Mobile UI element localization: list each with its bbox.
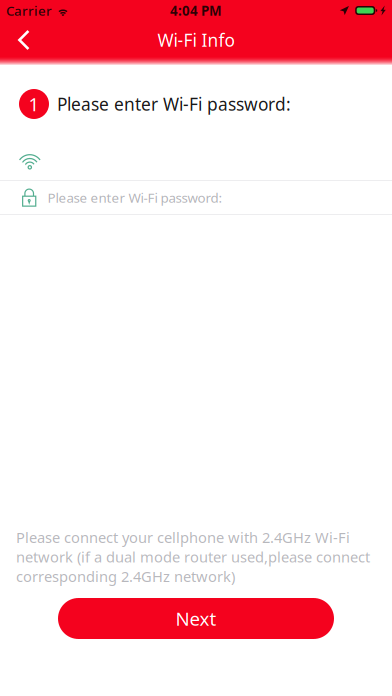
staticText: Wi-Fi Info [157, 28, 234, 51]
staticText: 1 [28, 92, 39, 116]
button[interactable]: Please enter Wi-Fi password [0, 181, 392, 214]
staticText: Please enter Wi-Fi password: [47, 189, 222, 206]
button[interactable]: Back [0, 24, 44, 56]
button[interactable]: Next [58, 598, 334, 639]
button[interactable]: Wi-Fi network [0, 119, 392, 180]
staticText: Please connect your cellphone with 2.4GH… [16, 528, 370, 586]
staticText: Carrier [6, 2, 52, 19]
staticText: Next [175, 606, 216, 631]
staticText: 4:04 PM [170, 2, 222, 19]
staticText: Please enter Wi-Fi password: [57, 92, 291, 115]
